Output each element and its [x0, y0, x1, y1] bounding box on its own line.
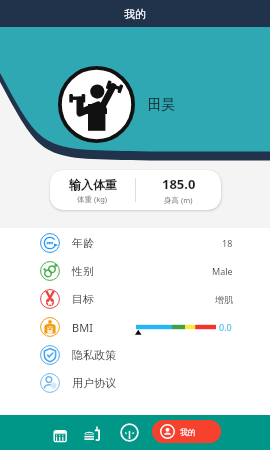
- staticText: 隐私政策: [72, 348, 116, 362]
- staticText: 目标: [72, 292, 94, 306]
- staticText: 田昊: [148, 96, 175, 113]
- staticText: 年龄: [72, 236, 94, 250]
- staticText: BMI: [72, 320, 93, 335]
- button[interactable]: 年龄: [0, 229, 270, 257]
- staticText: 输入体重: [69, 177, 117, 192]
- button[interactable]: 我的: [152, 420, 221, 443]
- staticText: 185.0: [162, 175, 196, 193]
- button[interactable]: BMI: [0, 313, 270, 341]
- button[interactable]: Food: [81, 422, 102, 443]
- button[interactable]: 用户协议: [0, 369, 270, 397]
- staticText: 我的: [180, 427, 196, 437]
- staticText: 身高 (m): [164, 195, 193, 205]
- button[interactable]: Profile photo: [58, 66, 135, 143]
- button[interactable]: Calendar: [48, 422, 69, 443]
- staticText: 增肌: [215, 294, 233, 305]
- button[interactable]: 隐私政策: [0, 341, 270, 369]
- staticText: 性别: [72, 264, 94, 278]
- staticText: 用户协议: [72, 376, 116, 390]
- button[interactable]: 性别: [0, 257, 270, 285]
- button[interactable]: 输入体重: [50, 170, 221, 210]
- staticText: 我的: [124, 7, 146, 21]
- staticText: 18: [222, 237, 233, 249]
- button[interactable]: 目标: [0, 285, 270, 313]
- staticText: Male: [212, 265, 233, 277]
- staticText: 体重 (kg): [77, 194, 108, 204]
- staticText: 0.0: [219, 321, 232, 333]
- button[interactable]: Stats: [119, 422, 140, 443]
